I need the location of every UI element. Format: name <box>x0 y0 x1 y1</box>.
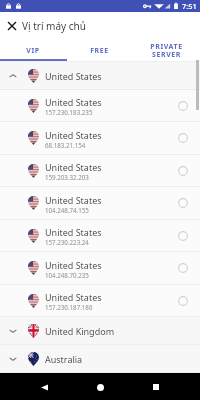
button[interactable]: Close <box>3 17 21 35</box>
staticText: United States <box>45 129 102 141</box>
staticText: United States <box>45 291 102 303</box>
staticText: 104.248.70.235 <box>45 271 89 279</box>
staticText: Vị trí máy chủ <box>22 19 86 33</box>
button[interactable]: PRIVATE SERVER <box>133 42 200 59</box>
staticText: 157.230.187.186 <box>45 303 93 311</box>
button[interactable]: United States <box>0 220 200 251</box>
staticText: 7:51 <box>182 1 197 11</box>
button[interactable]: Home <box>88 375 112 399</box>
button[interactable]: Recents <box>144 375 168 399</box>
button[interactable]: United Kingdom <box>0 317 200 344</box>
button[interactable]: United States <box>0 62 200 89</box>
button[interactable]: United States <box>0 155 200 186</box>
staticText: 68.183.21.154 <box>45 141 86 149</box>
staticText: VIP <box>26 46 40 56</box>
button[interactable]: United States <box>0 285 200 316</box>
staticText: 157.230.223.24 <box>45 238 89 246</box>
staticText: 104.248.74.155 <box>45 206 89 214</box>
button[interactable]: United States <box>0 122 200 154</box>
staticText: 157.230.183.235 <box>45 108 93 116</box>
staticText: PRIVATE SERVER <box>150 42 183 59</box>
button[interactable]: Australia <box>0 345 200 372</box>
staticText: United States <box>45 161 102 173</box>
button[interactable]: Back <box>32 375 56 399</box>
button[interactable]: United States <box>0 90 200 121</box>
staticText: Australia <box>45 353 83 365</box>
button[interactable]: FREE <box>66 42 133 59</box>
staticText: United States <box>45 70 102 82</box>
button[interactable]: United States <box>0 187 200 219</box>
staticText: United Kingdom <box>45 325 115 337</box>
staticText: FREE <box>90 46 109 56</box>
button[interactable]: VIP <box>0 42 66 59</box>
staticText: United States <box>45 226 102 238</box>
button[interactable]: United States <box>0 252 200 284</box>
staticText: 159.203.32.203 <box>45 173 89 181</box>
staticText: United States <box>45 259 102 271</box>
staticText: United States <box>45 194 102 206</box>
staticText: United States <box>45 96 102 108</box>
